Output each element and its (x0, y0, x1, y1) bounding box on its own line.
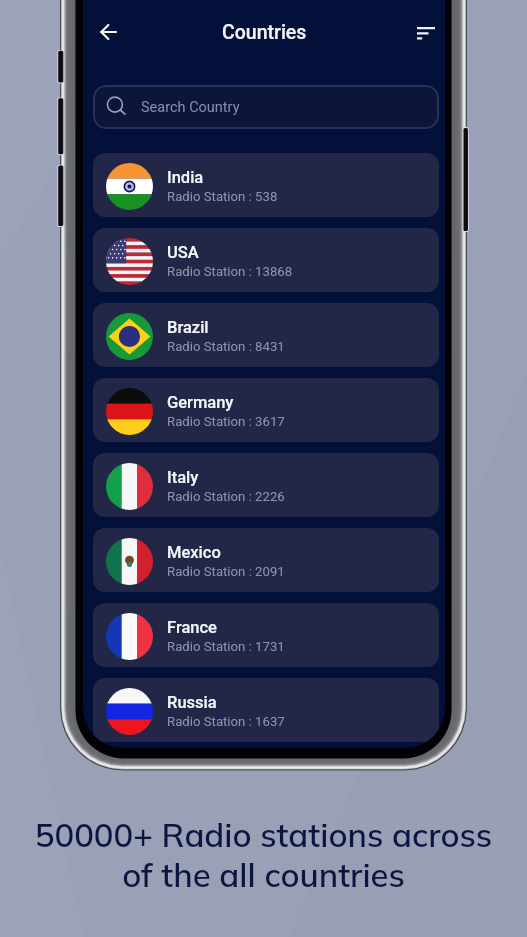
staticText: Radio Station : 3617 (167, 414, 285, 429)
button[interactable]: Italy (93, 453, 439, 517)
staticText: Radio Station : 1731 (167, 639, 285, 654)
staticText: Radio Station : 2226 (167, 489, 285, 504)
staticText: India (167, 168, 204, 187)
staticText: Radio Station : 8431 (167, 339, 285, 354)
button[interactable]: Brazil (93, 303, 439, 367)
button[interactable]: Search Country (93, 85, 439, 129)
button[interactable]: Russia (93, 678, 439, 742)
staticText: Italy (167, 468, 199, 487)
button[interactable]: Mexico (93, 528, 439, 592)
staticText: Radio Station : 13868 (167, 264, 293, 279)
button[interactable]: France (93, 603, 439, 667)
staticText: Radio Station : 2091 (167, 564, 285, 579)
button[interactable]: Germany (93, 378, 439, 442)
staticText: France (167, 618, 217, 637)
staticText: Germany (167, 393, 234, 412)
staticText: Russia (167, 693, 217, 712)
button[interactable]: India (93, 153, 439, 217)
staticText: Brazil (167, 318, 209, 337)
staticText: Countries (222, 21, 307, 44)
staticText: Mexico (167, 543, 221, 562)
staticText: 50000+ Radio stations across of the all … (0, 814, 527, 895)
staticText: Radio Station : 1637 (167, 714, 285, 729)
button[interactable]: USA (93, 228, 439, 292)
staticText: Radio Station : 538 (167, 189, 278, 204)
button[interactable]: Back (88, 12, 128, 52)
staticText: USA (167, 243, 199, 262)
button[interactable]: Sort (406, 12, 445, 52)
staticText: Search Country (141, 99, 240, 116)
